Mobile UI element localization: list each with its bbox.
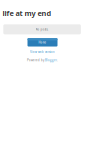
staticText: No posts. <box>36 27 49 32</box>
button[interactable]: View web version <box>27 49 57 54</box>
staticText: . <box>57 58 58 62</box>
staticText: View web version <box>30 49 55 54</box>
button[interactable]: Home <box>27 38 57 46</box>
staticText: Powered by <box>27 58 45 62</box>
button[interactable]: Blogger <box>45 58 57 62</box>
staticText: Home <box>38 40 46 45</box>
staticText: life at my end <box>2 8 51 18</box>
staticText: Blogger <box>45 58 57 62</box>
